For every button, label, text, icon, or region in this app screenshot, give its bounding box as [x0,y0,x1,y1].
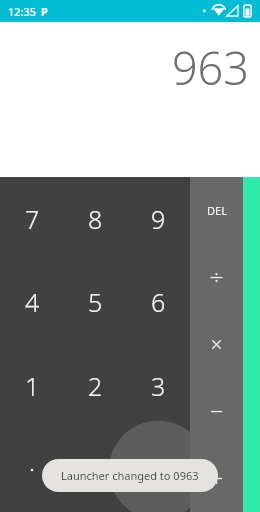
button[interactable]: 1 [0,344,64,428]
staticText: 1 [25,369,40,403]
staticText: Launcher changed to 0963 [61,468,199,483]
staticText: 5 [88,285,103,319]
staticText: P [41,4,48,19]
button[interactable]: multiply [190,311,243,378]
staticText: 4 [25,285,40,319]
button[interactable]: add [190,445,243,512]
staticText: 9 [151,202,166,236]
button[interactable]: 7 [0,177,64,260]
button[interactable]: 0 [64,428,127,512]
button[interactable] [0,428,64,512]
button[interactable]: divide [190,244,243,311]
staticText: DEL [207,203,227,218]
staticText: 12:35 [8,4,37,19]
button[interactable]: 2 [64,344,127,428]
button[interactable]: 3 [127,344,190,428]
staticText: 0 [88,453,103,487]
staticText: 6 [151,285,166,319]
button[interactable]: subtract [190,378,243,445]
button[interactable]: 8 [64,177,127,260]
staticText: 3 [151,369,166,403]
staticText: 7 [25,202,40,236]
button[interactable]: 5 [64,260,127,344]
button[interactable]: Delete [190,177,243,244]
button[interactable]: 4 [0,260,64,344]
button[interactable]: 9 [127,177,190,260]
button[interactable] [127,428,190,512]
button[interactable]: 6 [127,260,190,344]
staticText: 2 [88,369,103,403]
staticText: 963 [171,37,249,98]
staticText: 8 [88,202,103,236]
